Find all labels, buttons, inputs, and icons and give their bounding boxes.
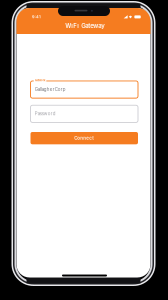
button[interactable]: Password (30, 103, 138, 122)
staticText: GallagherCorp (35, 87, 66, 92)
staticText: WiFi Gateway (65, 22, 105, 30)
button[interactable]: GallagherCorp (30, 78, 138, 98)
staticText: Network (35, 79, 45, 82)
staticText: Connect (74, 135, 94, 141)
button[interactable]: Connect (30, 132, 138, 144)
staticText: Password (35, 111, 56, 116)
staticText: 9:41 (32, 14, 41, 19)
